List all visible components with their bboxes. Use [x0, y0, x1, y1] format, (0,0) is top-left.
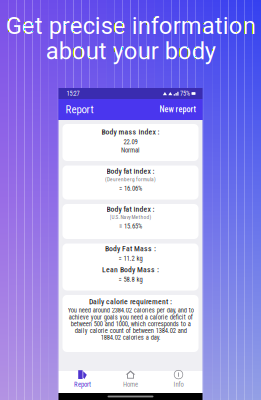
staticText: 22.09: [123, 138, 137, 146]
staticText: (Deurenberg formula): [105, 176, 156, 182]
staticText: New report: [159, 105, 195, 114]
staticText: Get precise information about your body: [5, 12, 255, 65]
staticText: 15:27: [66, 90, 79, 97]
staticText: Body Fat Mass :: [105, 244, 156, 253]
staticText: = 16.06%: [119, 184, 142, 192]
staticText: (U.S. Navy Method): [109, 214, 151, 220]
staticText: Normal: [121, 146, 140, 154]
staticText: = 58.8 kg: [118, 276, 142, 283]
staticText: Daily calorie requirement :: [89, 297, 172, 306]
staticText: Body mass index :: [101, 127, 159, 136]
staticText: Report: [65, 103, 93, 116]
staticText: Report: [74, 381, 91, 388]
staticText: 75%: [180, 90, 190, 97]
staticText: Body fat index :: [106, 204, 154, 214]
staticText: You need around 2384.02 calories per day…: [67, 307, 193, 341]
staticText: Info: [173, 381, 183, 388]
button[interactable]: Info: [154, 371, 202, 393]
staticText: Body fat index :: [106, 167, 154, 176]
staticText: Home: [123, 381, 138, 388]
button[interactable]: Report: [58, 371, 106, 393]
button[interactable]: New report: [159, 105, 195, 114]
staticText: = 11.2 kg: [118, 255, 142, 262]
button[interactable]: Home: [106, 371, 154, 393]
staticText: = 15.65%: [119, 222, 142, 230]
staticText: Lean Body Mass :: [102, 265, 159, 274]
